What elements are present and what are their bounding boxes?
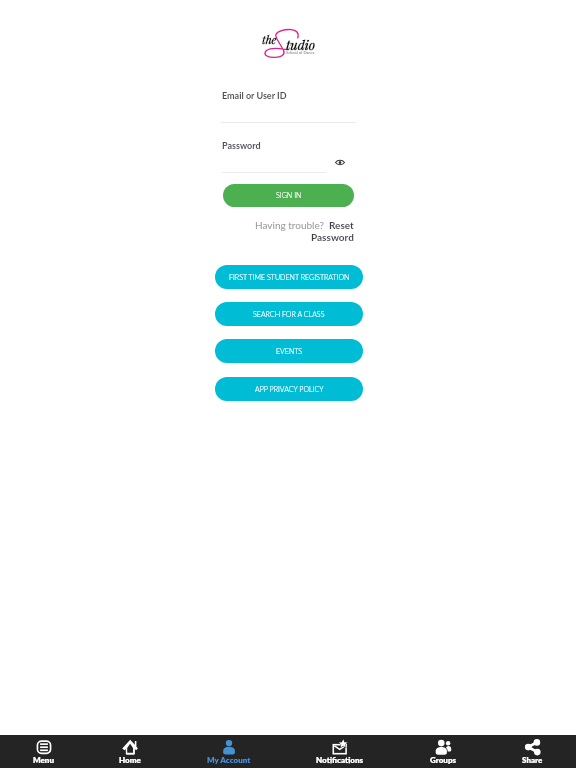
button[interactable]: Share bbox=[522, 739, 543, 765]
staticText: School of Dance bbox=[286, 50, 315, 55]
button[interactable]: Groups bbox=[430, 739, 457, 765]
button[interactable]: Home bbox=[119, 739, 141, 765]
button[interactable]: SIGN IN bbox=[223, 184, 354, 207]
button[interactable]: APP PRIVACY POLICY bbox=[215, 377, 363, 401]
staticText: Menu bbox=[33, 755, 54, 765]
staticText: APP PRIVACY POLICY bbox=[255, 385, 324, 394]
staticText: the bbox=[262, 32, 277, 47]
button[interactable]: FIRST TIME STUDENT REGISTRATION bbox=[215, 265, 363, 289]
staticText: Groups bbox=[430, 755, 457, 765]
staticText: My Account bbox=[207, 755, 251, 765]
staticText: SEARCH FOR A CLASS bbox=[253, 310, 325, 319]
staticText: Notifications bbox=[316, 755, 364, 765]
staticText: SIGN IN bbox=[276, 191, 302, 200]
button[interactable]: Show password bbox=[331, 153, 349, 171]
staticText: Having trouble? bbox=[255, 219, 324, 231]
button[interactable]: My Account bbox=[207, 739, 251, 765]
staticText: FIRST TIME STUDENT REGISTRATION bbox=[229, 273, 350, 282]
button[interactable]: Reset bbox=[329, 219, 354, 231]
staticText: Password bbox=[222, 140, 261, 151]
staticText: Email or User ID bbox=[222, 90, 287, 101]
button[interactable]: Notifications bbox=[316, 739, 364, 765]
staticText: tudio bbox=[286, 36, 316, 53]
button[interactable]: EVENTS bbox=[215, 339, 363, 363]
button[interactable]: Password bbox=[311, 231, 354, 243]
button[interactable]: SEARCH FOR A CLASS bbox=[215, 302, 363, 326]
staticText: Share bbox=[522, 755, 543, 765]
staticText: EVENTS bbox=[276, 347, 303, 356]
staticText: Home bbox=[119, 755, 141, 765]
button[interactable]: Menu bbox=[33, 739, 54, 765]
